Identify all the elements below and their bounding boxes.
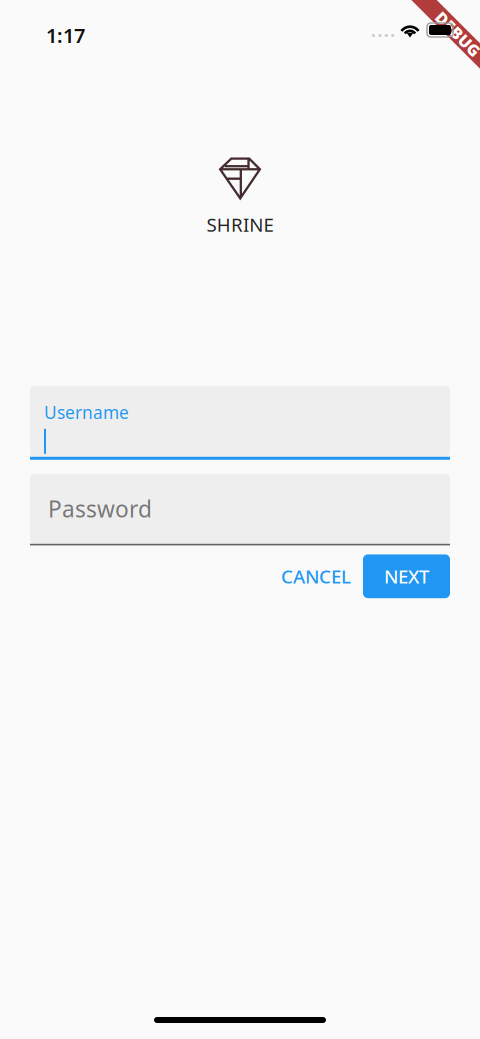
button[interactable]: CANCEL [263,554,363,598]
staticText: SHRINE [206,212,273,237]
staticText: Password [48,494,152,524]
staticText: CANCEL [281,564,351,589]
staticText: Username [44,401,129,424]
button[interactable]: NEXT [363,554,450,598]
staticText: NEXT [384,564,429,589]
staticText: DEBUG [430,23,480,45]
staticText: 1:17 [46,22,85,49]
